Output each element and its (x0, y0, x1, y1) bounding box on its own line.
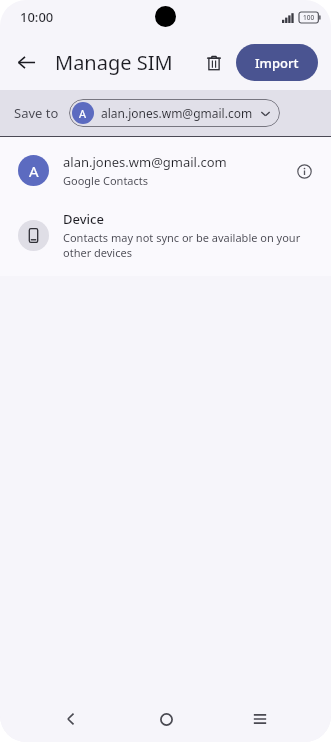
staticText: 10:00 (20, 8, 54, 26)
staticText: Device (63, 210, 104, 228)
button[interactable]: Delete (196, 45, 232, 81)
button[interactable]: Info (289, 156, 319, 186)
button[interactable]: Import (236, 44, 318, 81)
button[interactable]: A (0, 145, 331, 196)
button[interactable]: Back (48, 696, 94, 742)
staticText: Save to (14, 104, 59, 122)
staticText: Google Contacts (63, 173, 149, 188)
button[interactable]: Device (0, 204, 331, 270)
staticText: 100 (303, 13, 315, 22)
button[interactable]: Recent apps (237, 696, 283, 742)
staticText: alan.jones.wm@gmail.com (63, 153, 227, 171)
button[interactable]: Back (6, 42, 46, 82)
button[interactable]: A (69, 99, 280, 127)
staticText: A (79, 106, 87, 121)
staticText: A (29, 161, 39, 181)
staticText: Import (255, 54, 299, 72)
button[interactable]: Home (143, 696, 189, 742)
staticText: Contacts may not sync or be available on… (63, 230, 309, 260)
staticText: alan.jones.wm@gmail.com (101, 105, 253, 121)
staticText: Manage SIM (55, 49, 173, 76)
